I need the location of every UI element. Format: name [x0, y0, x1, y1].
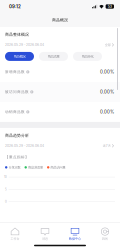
staticText: 我的: [102, 237, 108, 241]
staticText: 0.00%: [100, 89, 114, 94]
button[interactable]: 新增商品数: [0, 62, 120, 82]
staticText: 0.00%: [100, 109, 114, 114]
staticText: 商品浏览量: [28, 165, 43, 169]
button[interactable]: 工作台: [0, 226, 30, 242]
button[interactable]: 数据中心: [60, 226, 90, 242]
staticText: 动销商品数: [5, 110, 25, 114]
button[interactable]: 商品转化: [73, 52, 102, 61]
staticText: 09:12: [9, 4, 21, 9]
staticText: 商品访问量: [50, 165, 65, 169]
staticText: 商品趋势分析: [5, 133, 29, 138]
staticText: 53: [108, 4, 112, 9]
staticText: 被访问商品数: [5, 90, 29, 94]
staticText: 消息: [42, 237, 48, 241]
staticText: 新增商品数: [5, 70, 25, 74]
staticText: 0.00%: [100, 69, 114, 74]
staticText: 商品概况: [13, 54, 25, 58]
button[interactable]: 商品概况: [5, 52, 34, 61]
staticText: 商品转化: [81, 54, 93, 58]
staticText: 商品流量: [47, 54, 59, 58]
button[interactable]: 我的: [90, 226, 120, 242]
staticText: 2026.05.29 - 2026.06.04: [5, 144, 44, 148]
button[interactable]: 全部: [105, 43, 114, 47]
staticText: 商品整体概况: [5, 32, 29, 37]
staticText: 10: [4, 175, 7, 179]
staticText: 商品概况: [52, 18, 68, 22]
staticText: 近7天: [103, 144, 111, 148]
staticText: 5: [5, 188, 7, 191]
button[interactable]: 消息: [30, 226, 60, 242]
staticText: 全部: [105, 43, 111, 47]
staticText: 0: [5, 200, 7, 203]
staticText: 数据中心: [69, 237, 81, 241]
button[interactable]: 动销商品数: [0, 102, 120, 122]
button[interactable]: 被访问商品数: [0, 82, 120, 102]
button[interactable]: 商品流量: [39, 52, 68, 61]
button[interactable]: 近7天: [103, 144, 114, 148]
staticText: 分享次数: [8, 165, 20, 169]
staticText: 工作台: [10, 237, 19, 241]
staticText: 【重点指标】: [5, 155, 29, 159]
staticText: 2026.05.29 - 2026.06.04: [5, 43, 44, 47]
